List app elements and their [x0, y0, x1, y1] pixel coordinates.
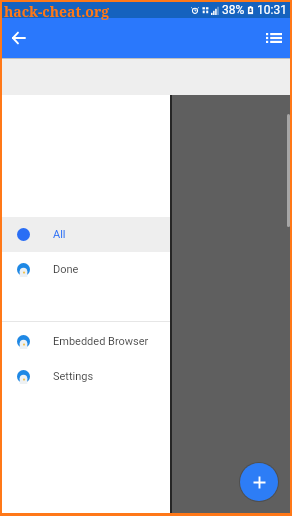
staticText: Settings	[53, 370, 94, 383]
button[interactable]: Done	[2, 252, 170, 287]
button[interactable]: Add	[240, 463, 278, 501]
staticText: hack-cheat.org	[4, 2, 110, 21]
staticText: Done	[53, 263, 79, 276]
button[interactable]: Settings	[2, 359, 170, 394]
button[interactable]: Embedded Browser	[2, 324, 170, 359]
staticText: All	[53, 228, 66, 241]
staticText: 10:31	[257, 3, 287, 17]
staticText: Embedded Browser	[53, 335, 149, 348]
button[interactable]: All	[2, 217, 170, 252]
button[interactable]: List view	[261, 25, 287, 51]
staticText: 38%	[222, 3, 245, 17]
button[interactable]: Back	[5, 25, 31, 51]
